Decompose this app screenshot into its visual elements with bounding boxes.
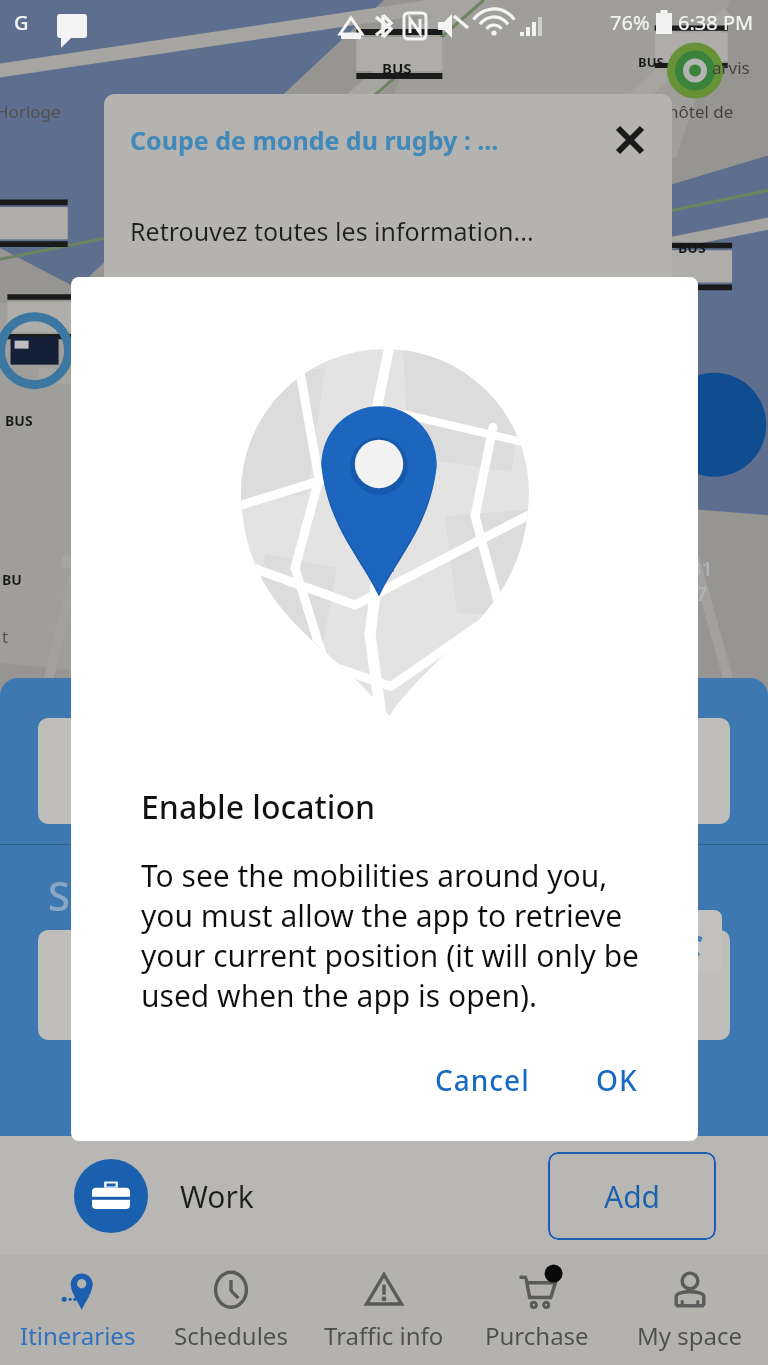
staticText: Add [604,1176,661,1217]
staticText: Retrouvez toutes les information... [130,214,534,248]
staticText: Itineraries [20,1319,136,1352]
staticText: S [48,868,70,922]
staticText: My space [637,1319,743,1352]
button[interactable]: Coupe de monde du rugby : ... [104,94,672,278]
staticText: arvis [712,56,750,79]
button[interactable]: Cancel [419,1047,546,1113]
staticText: 31 7 [690,555,713,607]
staticText: t [2,625,9,648]
staticText: Coupe de monde du rugby : ... [130,123,606,157]
staticText: To see the mobilities around you, you mu… [141,855,658,1016]
staticText: BUS [382,58,412,78]
button[interactable] [38,930,730,1040]
staticText: 6:38 PM [678,9,754,36]
button[interactable]: Purchase [462,1255,612,1365]
staticText: BUS [638,53,664,71]
button[interactable]: Itineraries [3,1255,153,1365]
staticText: Purchase [485,1319,589,1352]
staticText: hôtel de [668,100,734,123]
staticText: Traffic info [324,1319,444,1352]
button[interactable]: Add [548,1152,716,1240]
staticText: Cancel [435,1061,530,1099]
staticText: BU [2,570,22,589]
staticText: Work [180,1176,254,1217]
staticText: Schedules [174,1319,288,1352]
staticText: G [14,9,29,36]
staticText: BUS [5,411,33,430]
button[interactable]: My space [615,1255,765,1365]
other: Walking [660,910,722,972]
staticText: Horloge [0,100,61,123]
staticText: Enable location [141,785,376,829]
button[interactable]: OK [580,1047,654,1113]
button[interactable]: Schedules [156,1255,306,1365]
staticText: BUS [678,238,706,257]
button[interactable] [38,718,730,824]
staticText: 76% [610,9,650,36]
button[interactable]: Work shortcut [74,1159,148,1233]
button[interactable]: Close [606,116,654,164]
button[interactable]: Traffic info [309,1255,459,1365]
staticText: OK [596,1061,638,1099]
